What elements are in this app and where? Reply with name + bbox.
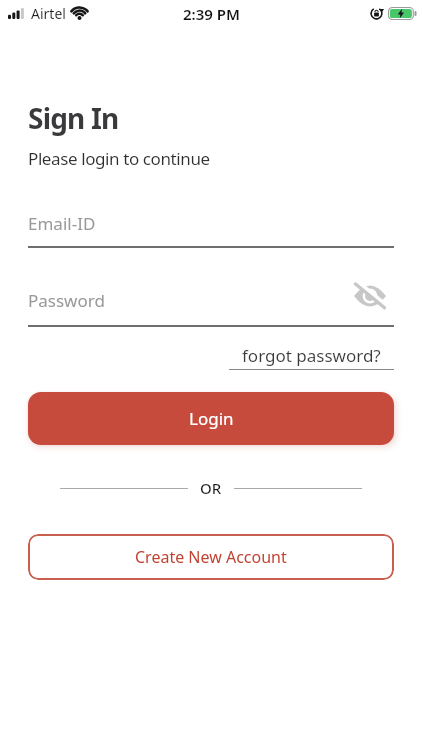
button[interactable]: Email-ID <box>28 212 394 248</box>
button[interactable]: Create New Account <box>28 534 394 580</box>
staticText: OR <box>200 478 222 498</box>
staticText: 2:39 PM <box>183 4 240 24</box>
button[interactable]: Password <box>28 289 394 327</box>
staticText: Sign In <box>28 99 119 137</box>
staticText: Create New Account <box>135 546 287 568</box>
button[interactable] <box>352 282 388 310</box>
staticText: forgot password? <box>242 344 381 367</box>
staticText: Please login to continue <box>28 147 210 170</box>
staticText: Airtel <box>31 4 66 23</box>
button[interactable]: forgot password? <box>229 344 394 370</box>
staticText: Email-ID <box>28 212 96 235</box>
button[interactable]: Login <box>28 392 394 445</box>
staticText: Login <box>189 407 234 430</box>
staticText: Password <box>28 289 105 312</box>
